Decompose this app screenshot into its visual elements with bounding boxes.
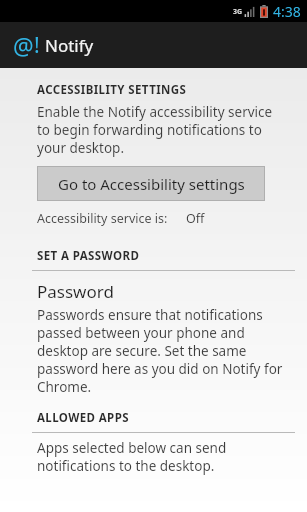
- button[interactable]: Notify app: [13, 30, 94, 61]
- staticText: Accessibility service is:: [37, 210, 168, 227]
- staticText: Notify: [45, 34, 94, 57]
- staticText: Enable the Notify accessibility service …: [37, 103, 283, 157]
- staticText: ACCESSIBILITY SETTINGS: [37, 82, 187, 98]
- staticText: !: [34, 31, 40, 60]
- staticText: 3G: [233, 7, 243, 17]
- button[interactable]: Password: [0, 280, 307, 396]
- staticText: Go to Accessibility settings: [58, 174, 245, 194]
- staticText: @: [13, 30, 34, 61]
- staticText: Off: [186, 210, 205, 227]
- staticText: Password: [37, 280, 114, 303]
- staticText: Passwords ensure that notifications pass…: [37, 306, 289, 396]
- button[interactable]: Go to Accessibility settings: [38, 167, 264, 200]
- staticText: SET A PASSWORD: [37, 248, 140, 264]
- staticText: ALLOWED APPS: [37, 410, 129, 426]
- staticText: Apps selected below can send notificatio…: [37, 439, 247, 475]
- staticText: 4:38: [273, 2, 301, 21]
